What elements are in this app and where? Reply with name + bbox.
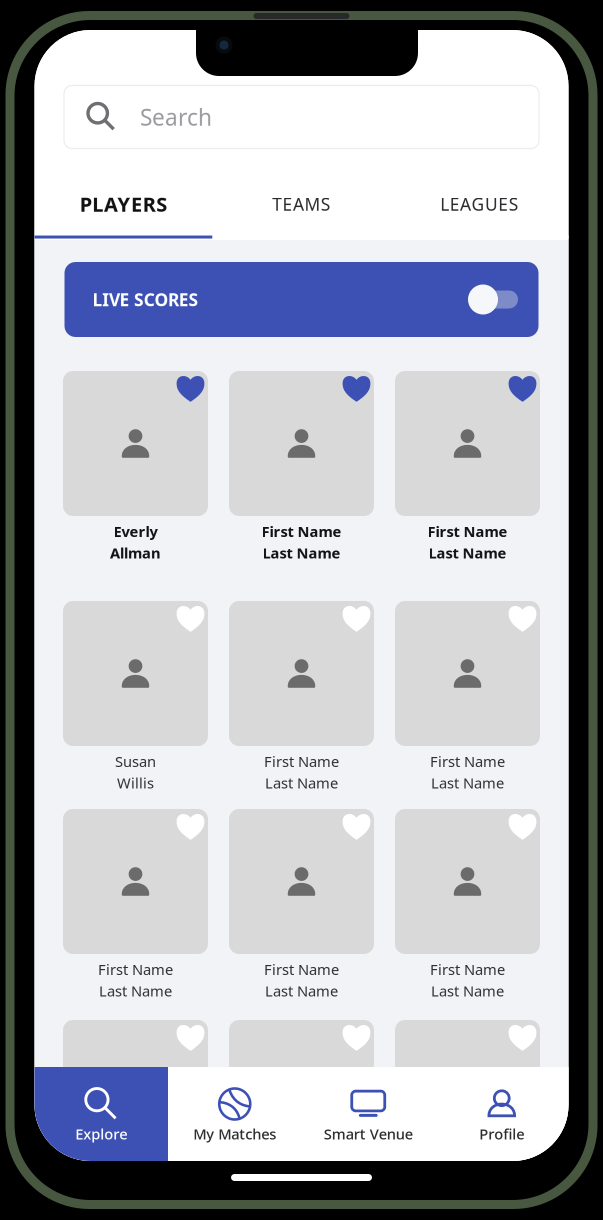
button[interactable]: Susan [63, 601, 208, 783]
staticText: First Name [427, 521, 507, 541]
staticText: My Matches [193, 1124, 276, 1143]
staticText: Everly [113, 521, 157, 541]
staticText: First Name [430, 959, 505, 979]
staticText: Willis [117, 773, 154, 792]
staticText: Last Name [265, 981, 338, 1000]
staticText: Smart Venue [324, 1124, 413, 1143]
staticText: Profile [479, 1124, 524, 1143]
button[interactable]: Smart Venue [301, 1067, 435, 1162]
staticText: Last Name [428, 543, 506, 562]
staticText: Search [140, 102, 212, 132]
staticText: Susan [115, 751, 156, 771]
button[interactable]: Profile [435, 1067, 568, 1162]
staticText: Explore [75, 1124, 127, 1143]
button[interactable]: First Name [63, 809, 208, 991]
staticText: LIVE SCORES [92, 288, 198, 311]
button[interactable]: First Name [229, 371, 374, 553]
button[interactable]: My Matches [168, 1067, 301, 1162]
button[interactable]: Explore [34, 1067, 168, 1162]
button[interactable]: First Name [395, 1020, 540, 1202]
staticText: Allman [110, 543, 161, 562]
staticText: Last Name [265, 773, 338, 792]
button[interactable]: PLAYERS [34, 172, 212, 235]
button[interactable]: First Name [229, 1020, 374, 1202]
button[interactable]: First Name [395, 371, 540, 553]
staticText: First Name [98, 959, 173, 979]
staticText: Last Name [262, 543, 340, 562]
button[interactable]: TEAMS [212, 172, 390, 235]
button[interactable]: Everly [63, 371, 208, 553]
button[interactable]: LEAGUES [390, 172, 568, 235]
button[interactable]: First Name [63, 1020, 208, 1202]
button[interactable]: First Name [395, 809, 540, 991]
staticText: Last Name [431, 1192, 504, 1211]
button[interactable]: First Name [229, 601, 374, 783]
button[interactable]: LIVE SCORES [64, 262, 538, 337]
staticText: PLAYERS [80, 191, 167, 217]
button[interactable]: Search [64, 85, 539, 148]
staticText: First Name [264, 1170, 339, 1190]
staticText: Last Name [265, 1192, 338, 1211]
button[interactable]: First Name [395, 601, 540, 783]
staticText: First Name [264, 751, 339, 771]
staticText: Last Name [431, 773, 504, 792]
staticText: First Name [430, 751, 505, 771]
button[interactable]: First Name [229, 809, 374, 991]
staticText: LEAGUES [440, 192, 519, 215]
staticText: Last Name [99, 1192, 172, 1211]
staticText: First Name [264, 959, 339, 979]
staticText: First Name [261, 521, 341, 541]
staticText: Last Name [99, 981, 172, 1000]
staticText: Last Name [431, 981, 504, 1000]
staticText: TEAMS [272, 192, 331, 215]
